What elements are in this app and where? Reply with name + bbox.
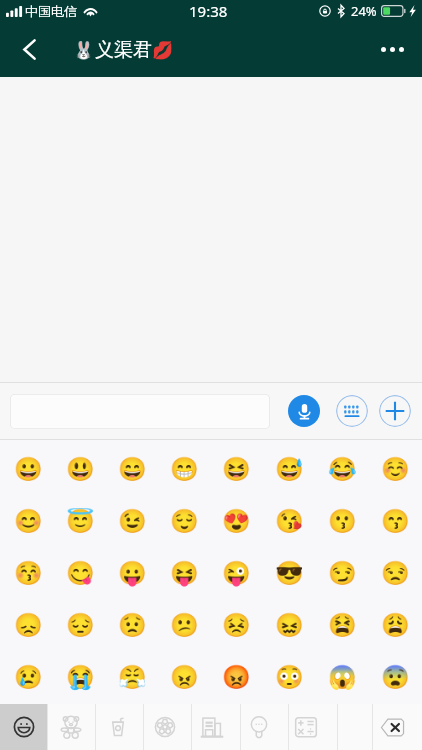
button[interactable]: 😍 [210, 495, 263, 547]
button[interactable]: 😱 [316, 651, 369, 703]
button[interactable]: More functions [379, 395, 411, 427]
staticText: 😇 [66, 508, 95, 535]
button[interactable]: 😋 [54, 547, 106, 599]
button[interactable]: Toys [47, 704, 94, 750]
button[interactable]: 😌 [158, 495, 210, 547]
staticText: 😡 [222, 664, 251, 691]
staticText: 😖 [275, 612, 304, 639]
button[interactable]: 😡 [210, 651, 263, 703]
button[interactable]: 😂 [316, 443, 369, 495]
staticText: 😅 [275, 456, 304, 483]
staticText: ☺️ [381, 456, 410, 483]
button[interactable]: 😝 [158, 547, 210, 599]
staticText: 😨 [381, 664, 410, 691]
staticText: 😏 [328, 560, 357, 587]
staticText: 😀 [14, 456, 43, 483]
staticText: 😎 [275, 560, 304, 587]
staticText: 😞 [14, 612, 43, 639]
staticText: 😜 [222, 560, 251, 587]
staticText: 🐰 [73, 40, 95, 60]
button[interactable]: Objects [235, 704, 282, 750]
button[interactable]: Keyboard [336, 395, 368, 427]
button[interactable]: 😚 [2, 547, 54, 599]
button[interactable]: Sports [141, 704, 188, 750]
button[interactable]: 😄 [106, 443, 158, 495]
staticText: 😃 [66, 456, 95, 483]
staticText: 😭 [66, 664, 95, 691]
button[interactable]: 😕 [158, 599, 210, 651]
staticText: 😩 [381, 612, 410, 639]
button[interactable]: Emoji [0, 704, 47, 750]
staticText: 😄 [118, 456, 147, 483]
button[interactable]: 😭 [54, 651, 106, 703]
button[interactable]: 😅 [263, 443, 316, 495]
button[interactable]: 😒 [369, 547, 422, 599]
staticText: 😋 [66, 560, 95, 587]
button[interactable]: 😟 [106, 599, 158, 651]
button[interactable]: 😇 [54, 495, 106, 547]
button[interactable]: 😠 [158, 651, 210, 703]
staticText: 😉 [118, 508, 147, 535]
staticText: 😁 [170, 456, 199, 483]
button[interactable]: 😔 [54, 599, 106, 651]
button[interactable]: Message input [10, 394, 270, 429]
button[interactable]: Food [94, 704, 141, 750]
button[interactable]: 😨 [369, 651, 422, 703]
button[interactable]: 😙 [369, 495, 422, 547]
button[interactable]: 😛 [106, 547, 158, 599]
staticText: 😫 [328, 612, 357, 639]
staticText: 😳 [275, 664, 304, 691]
button[interactable]: 😖 [263, 599, 316, 651]
button[interactable]: 😩 [369, 599, 422, 651]
staticText: 💋 [152, 40, 174, 60]
button[interactable]: 😀 [2, 443, 54, 495]
button[interactable]: 😫 [316, 599, 369, 651]
staticText: 😤 [118, 664, 147, 691]
button[interactable]: 😊 [2, 495, 54, 547]
staticText: 😊 [14, 508, 43, 535]
button[interactable]: 😤 [106, 651, 158, 703]
staticText: 😠 [170, 664, 199, 691]
button[interactable]: Symbols [282, 704, 329, 750]
button[interactable]: 😳 [263, 651, 316, 703]
button[interactable]: 😁 [158, 443, 210, 495]
button[interactable]: 😗 [316, 495, 369, 547]
staticText: 😂 [328, 456, 357, 483]
staticText: 😱 [328, 664, 357, 691]
button[interactable]: 😏 [316, 547, 369, 599]
staticText: 😘 [275, 508, 304, 535]
staticText: 😙 [381, 508, 410, 535]
staticText: 😛 [118, 560, 147, 587]
staticText: 😔 [66, 612, 95, 639]
button[interactable]: More options [362, 22, 422, 77]
staticText: 😝 [170, 560, 199, 587]
staticText: 19:38 [189, 1, 228, 21]
button[interactable]: Buildings [188, 704, 235, 750]
staticText: 😚 [14, 560, 43, 587]
staticText: 😌 [170, 508, 199, 535]
button[interactable]: 😃 [54, 443, 106, 495]
staticText: 😒 [381, 560, 410, 587]
button[interactable]: Back [0, 22, 58, 77]
staticText: 😗 [328, 508, 357, 535]
button[interactable]: 😉 [106, 495, 158, 547]
button[interactable]: 😞 [2, 599, 54, 651]
button[interactable]: Voice input [288, 395, 320, 427]
button[interactable]: 😣 [210, 599, 263, 651]
button[interactable]: ☺️ [369, 443, 422, 495]
staticText: 义渠君 [95, 38, 152, 62]
button[interactable]: 😎 [263, 547, 316, 599]
staticText: 😟 [118, 612, 147, 639]
button[interactable]: Backspace [363, 704, 422, 750]
staticText: 😣 [222, 612, 251, 639]
staticText: 中国电信 [25, 3, 77, 19]
staticText: 😕 [170, 612, 199, 639]
button[interactable]: 😜 [210, 547, 263, 599]
button[interactable]: 😘 [263, 495, 316, 547]
staticText: 24% [351, 2, 377, 20]
staticText: 😢 [14, 664, 43, 691]
staticText: 😍 [222, 508, 251, 535]
button[interactable]: 😢 [2, 651, 54, 703]
staticText: 😆 [222, 456, 251, 483]
button[interactable]: 😆 [210, 443, 263, 495]
